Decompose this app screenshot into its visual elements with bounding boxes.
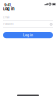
staticText: Email — [3, 16, 10, 19]
staticText: Password — [3, 23, 13, 26]
staticText: Log in — [3, 6, 14, 11]
staticText: Log in — [23, 33, 33, 37]
button[interactable]: Show password — [50, 23, 53, 26]
button[interactable]: Log in — [3, 32, 53, 38]
staticText: 9:41 — [4, 3, 10, 7]
